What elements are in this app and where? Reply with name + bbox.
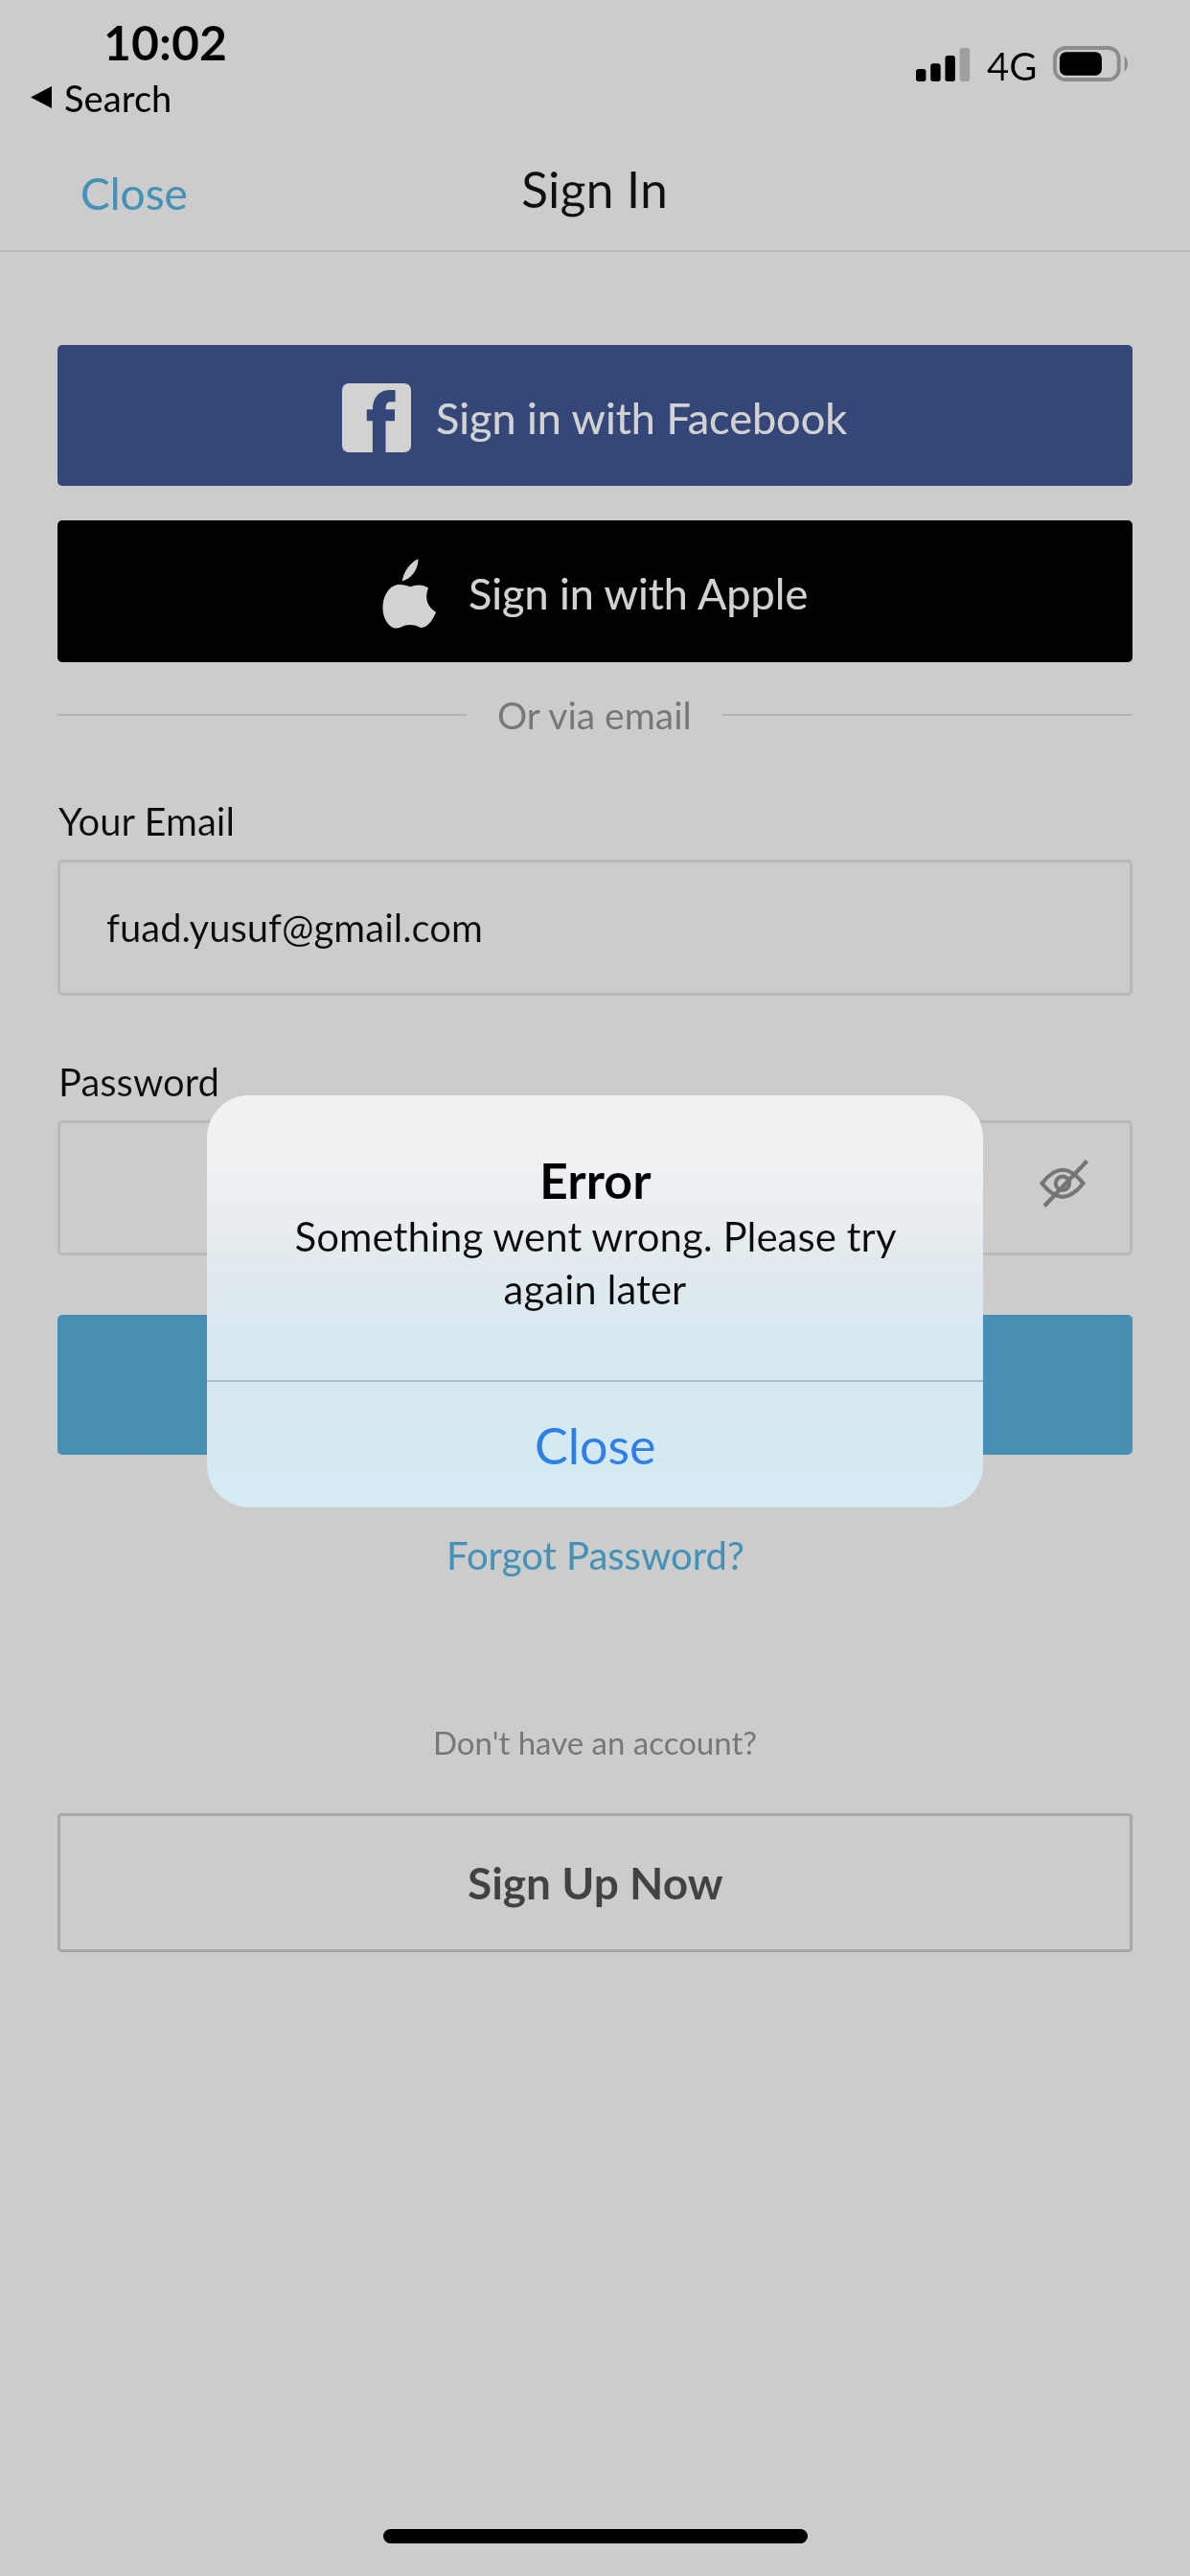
staticText: Something went wrong. Please try again l… bbox=[279, 1212, 911, 1313]
staticText: Forgot Password? bbox=[446, 1532, 744, 1578]
button[interactable]: Close bbox=[207, 1382, 983, 1507]
staticText: Sign In bbox=[521, 159, 669, 218]
button[interactable]: Sign Up Now bbox=[57, 1813, 1133, 1952]
button[interactable]: Show password bbox=[1014, 1139, 1111, 1237]
staticText: Close bbox=[535, 1415, 656, 1475]
staticText: Or via email bbox=[497, 693, 692, 738]
button[interactable]: Forgot Password? bbox=[427, 1523, 764, 1588]
button[interactable]: Sign In bbox=[57, 1315, 1133, 1455]
button[interactable]: Show password bbox=[57, 1120, 1133, 1255]
staticText: Sign in with Facebook bbox=[436, 392, 848, 444]
staticText: 4G bbox=[987, 43, 1038, 89]
staticText: Don't have an account? bbox=[433, 1723, 758, 1761]
staticText: Sign in with Apple bbox=[469, 567, 809, 619]
button[interactable]: fuad.yusuf@gmail.com bbox=[57, 860, 1133, 996]
button[interactable]: Sign in with Apple bbox=[57, 520, 1133, 662]
staticText: Password bbox=[58, 1059, 219, 1105]
button[interactable]: Close bbox=[62, 151, 206, 234]
staticText: Close bbox=[80, 167, 188, 219]
staticText: Error bbox=[539, 1150, 652, 1209]
staticText: Your Email bbox=[58, 798, 235, 844]
button[interactable]: Sign in with Facebook bbox=[57, 345, 1133, 486]
staticText: Search bbox=[64, 76, 172, 120]
staticText: fuad.yusuf@gmail.com bbox=[106, 905, 483, 951]
staticText: Sign Up Now bbox=[468, 1856, 723, 1909]
staticText: 10:02 bbox=[103, 13, 227, 71]
staticText: Sign In bbox=[527, 1357, 664, 1413]
